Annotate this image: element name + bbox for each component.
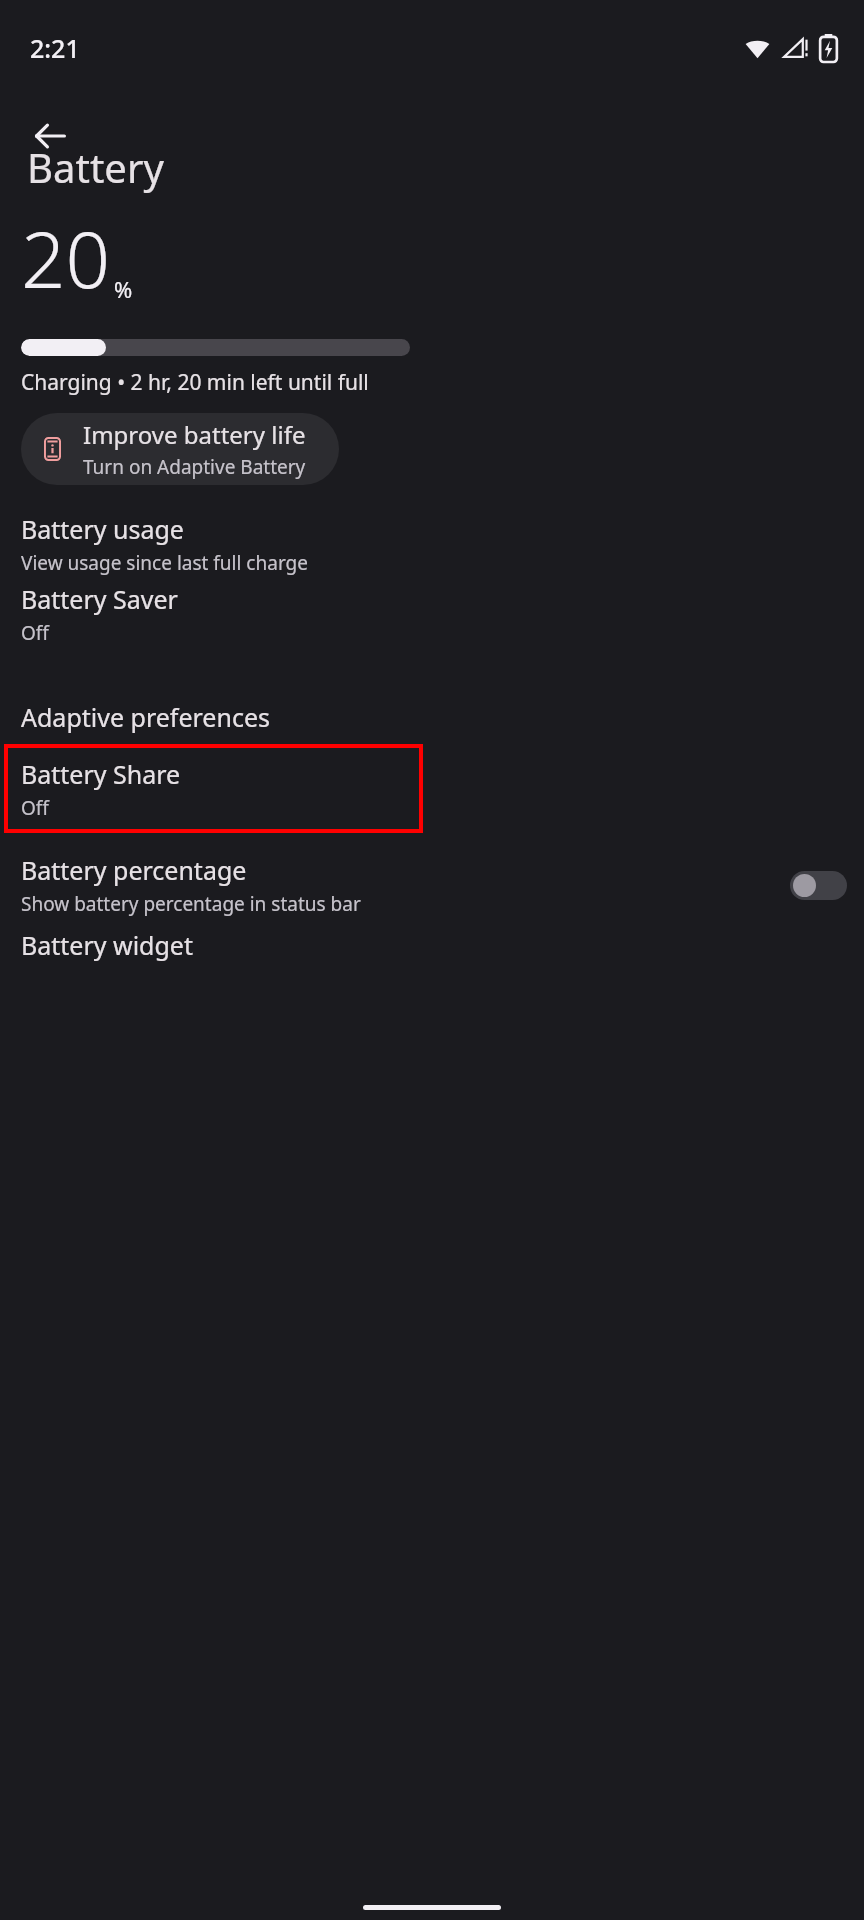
staticText: Turn on Adaptive Battery: [83, 454, 306, 480]
staticText: Charging • 2 hr, 20 min left until full: [21, 368, 369, 397]
staticText: 20: [21, 205, 111, 311]
button[interactable]: Battery Share: [6, 746, 421, 831]
staticText: 2:21: [30, 31, 80, 65]
staticText: Off: [21, 620, 49, 646]
staticText: Battery percentage: [21, 853, 247, 887]
button[interactable]: Back: [16, 102, 84, 170]
other: Battery percentage toggle: [790, 871, 847, 900]
staticText: %: [114, 274, 133, 304]
button[interactable]: Battery usage: [0, 512, 864, 576]
button[interactable]: Adaptive preferences: [21, 700, 864, 734]
staticText: Battery Share: [21, 757, 181, 791]
staticText: View usage since last full charge: [21, 550, 308, 576]
staticText: Battery Saver: [21, 582, 178, 616]
staticText: Battery usage: [21, 512, 184, 546]
staticText: Improve battery life: [83, 418, 306, 451]
staticText: Show battery percentage in status bar: [21, 891, 361, 917]
staticText: Off: [21, 795, 49, 821]
button[interactable]: Battery Saver: [0, 582, 864, 646]
button[interactable]: Battery percentage: [0, 840, 864, 930]
button[interactable]: Battery widget: [21, 928, 864, 962]
staticText: Battery: [27, 140, 164, 194]
button[interactable]: Improve battery life: [21, 413, 339, 485]
